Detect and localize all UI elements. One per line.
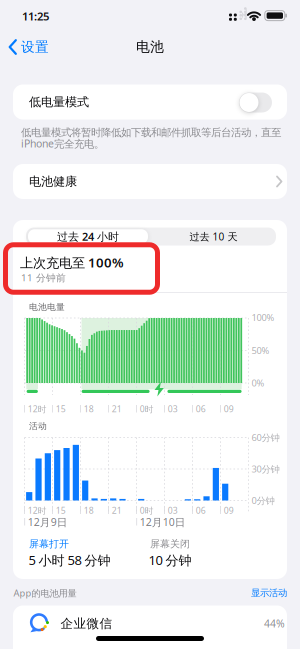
staticText: 03 bbox=[168, 505, 178, 516]
staticText: 21 bbox=[112, 505, 122, 516]
staticText: 活动 bbox=[29, 420, 47, 432]
staticText: 电池 bbox=[136, 38, 164, 56]
staticText: 11:25 bbox=[22, 8, 49, 24]
staticText: 100% bbox=[251, 311, 274, 324]
staticText: 15 bbox=[56, 403, 66, 415]
staticText: 显示活动 bbox=[251, 587, 287, 599]
staticText: 5 小时 58 分钟 bbox=[28, 551, 110, 569]
staticText: 18 bbox=[84, 505, 94, 516]
staticText: 44% bbox=[264, 616, 285, 631]
staticText: 18 bbox=[84, 403, 94, 415]
staticText: 15 bbox=[56, 505, 66, 516]
staticText: 屏幕关闭 bbox=[150, 538, 190, 550]
staticText: 过去 10 天 bbox=[189, 230, 237, 243]
staticText: 电池健康 bbox=[29, 174, 77, 189]
staticText: 03 bbox=[168, 403, 178, 415]
staticText: App的电池用量 bbox=[13, 587, 76, 599]
staticText: 屏幕打开 bbox=[29, 538, 69, 550]
staticText: 12时 bbox=[28, 505, 47, 516]
button[interactable]: 电池健康 bbox=[13, 164, 287, 199]
staticText: 过去 24 小时 bbox=[57, 229, 119, 244]
staticText: 06 bbox=[196, 403, 206, 415]
staticText: 电池电量 bbox=[29, 301, 65, 313]
staticText: 10 分钟 bbox=[148, 551, 191, 569]
staticText: 0分钟 bbox=[251, 494, 274, 507]
button[interactable]: 返回设置 bbox=[0, 33, 52, 61]
button[interactable]: 显示活动 bbox=[239, 586, 287, 600]
staticText: 低电量模式将暂时降低如下载和邮件抓取等后台活动，直至 bbox=[21, 126, 281, 139]
staticText: 11 分钟前 bbox=[21, 271, 66, 284]
button[interactable]: 过去 10 天 bbox=[153, 229, 273, 244]
staticText: 21 bbox=[112, 403, 122, 415]
button[interactable]: 低电量模式开关 bbox=[239, 92, 272, 112]
staticText: 0时 bbox=[140, 403, 154, 415]
staticText: 50% bbox=[251, 344, 269, 357]
staticText: 30分钟 bbox=[251, 463, 279, 475]
staticText: 0% bbox=[251, 377, 264, 389]
staticText: 09 bbox=[224, 403, 234, 415]
staticText: 12时 bbox=[28, 403, 47, 415]
staticText: 低电量模式 bbox=[29, 94, 89, 110]
staticText: 60分钟 bbox=[251, 431, 279, 444]
staticText: 12月9日 bbox=[28, 515, 68, 529]
button[interactable]: 过去 24 小时 bbox=[28, 229, 148, 244]
staticText: 设置 bbox=[21, 38, 49, 55]
staticText: iPhone完全充电。 bbox=[21, 136, 104, 151]
staticText: 0时 bbox=[140, 505, 154, 516]
button[interactable]: 企业微信 bbox=[13, 605, 287, 641]
staticText: 06 bbox=[196, 505, 206, 516]
staticText: 09 bbox=[224, 505, 234, 516]
staticText: 企业微信 bbox=[60, 616, 112, 631]
staticText: 12月10日 bbox=[140, 515, 186, 529]
staticText: 上次充电至 100% bbox=[20, 253, 124, 271]
